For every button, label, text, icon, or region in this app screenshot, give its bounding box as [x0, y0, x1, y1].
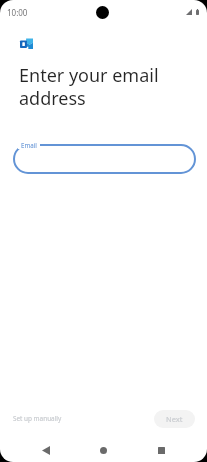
button[interactable]: Home	[91, 438, 116, 462]
staticText: Next	[166, 414, 183, 424]
staticText: Set up manually	[13, 414, 62, 423]
button[interactable]: Set up manually	[8, 410, 67, 427]
staticText: Email	[21, 141, 37, 149]
button[interactable]: Back	[33, 438, 59, 462]
button[interactable]: Recent apps	[149, 438, 174, 462]
button[interactable]: Next	[154, 410, 195, 428]
staticText: 10:00	[7, 7, 28, 18]
button[interactable]	[13, 144, 196, 174]
staticText: Enter your email address	[19, 63, 159, 110]
